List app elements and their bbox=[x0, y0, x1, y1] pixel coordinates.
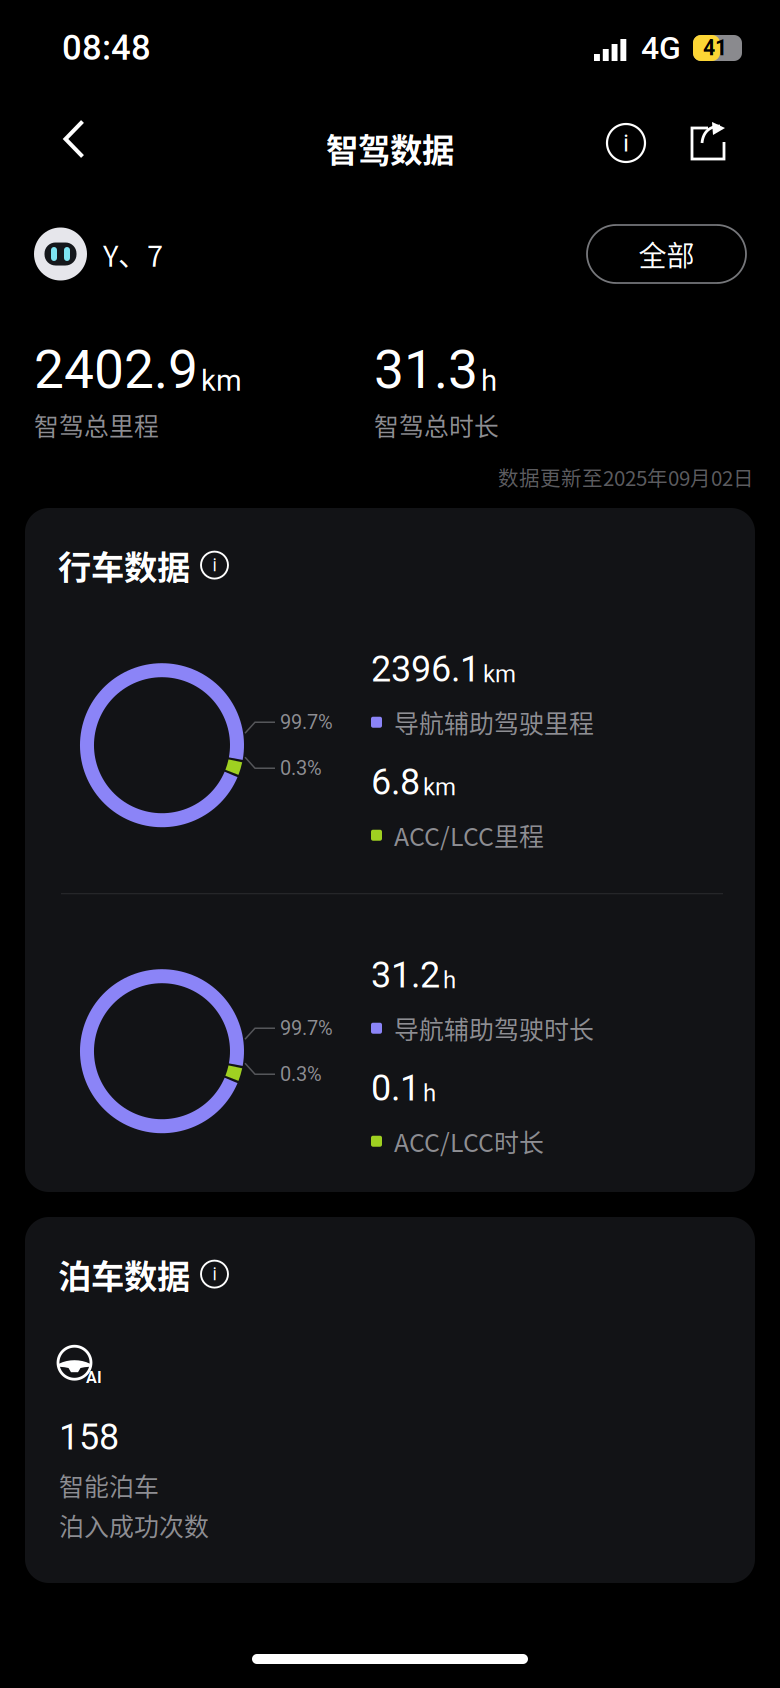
staticText: 99.7% bbox=[280, 710, 333, 734]
staticText: h bbox=[423, 1079, 436, 1107]
staticText: 智能泊车 bbox=[59, 1467, 159, 1503]
staticText: 2402.9 bbox=[34, 338, 198, 401]
staticText: i bbox=[212, 555, 216, 575]
staticText: 数据更新至2025年09月02日 bbox=[498, 462, 754, 492]
staticText: ACC/LCC里程 bbox=[394, 817, 544, 853]
staticText: 泊车数据 bbox=[58, 1250, 190, 1298]
staticText: 全部 bbox=[638, 234, 694, 274]
staticText: 导航辅助驾驶时长 bbox=[394, 1010, 594, 1046]
button[interactable]: Back bbox=[36, 96, 112, 182]
staticText: 31.2 bbox=[371, 954, 440, 996]
staticText: ACC/LCC时长 bbox=[394, 1123, 544, 1159]
staticText: 泊入成功次数 bbox=[59, 1507, 209, 1543]
staticText: 158 bbox=[59, 1416, 119, 1458]
button[interactable]: Info bbox=[594, 107, 658, 178]
staticText: 0.1 bbox=[371, 1067, 420, 1109]
staticText: 08:48 bbox=[62, 28, 151, 68]
staticText: km bbox=[201, 364, 242, 398]
button[interactable]: Share bbox=[673, 101, 743, 184]
staticText: 99.7% bbox=[280, 1016, 333, 1040]
staticText: 智驾数据 bbox=[326, 125, 454, 172]
button[interactable]: About 泊车数据 bbox=[201, 1261, 228, 1288]
staticText: km bbox=[423, 773, 456, 801]
staticText: 0.3% bbox=[280, 756, 322, 780]
staticText: km bbox=[483, 660, 516, 688]
staticText: 导航辅助驾驶里程 bbox=[394, 704, 594, 740]
staticText: 0.3% bbox=[280, 1062, 322, 1086]
button[interactable]: About 行车数据 bbox=[201, 552, 228, 579]
staticText: 41 bbox=[703, 35, 727, 60]
staticText: AI bbox=[86, 1368, 102, 1387]
staticText: i bbox=[212, 1264, 216, 1284]
staticText: h bbox=[443, 966, 456, 994]
staticText: 31.3 bbox=[374, 338, 478, 401]
staticText: h bbox=[481, 364, 497, 398]
staticText: 6.8 bbox=[371, 761, 420, 803]
staticText: 2396.1 bbox=[371, 648, 480, 690]
staticText: 智驾总时长 bbox=[374, 407, 499, 443]
button[interactable]: 全部 bbox=[587, 225, 746, 283]
staticText: 行车数据 bbox=[58, 541, 190, 589]
staticText: i bbox=[623, 128, 629, 158]
staticText: Y、7 bbox=[103, 233, 163, 275]
staticText: 4G bbox=[641, 29, 681, 67]
staticText: 智驾总里程 bbox=[34, 407, 159, 443]
